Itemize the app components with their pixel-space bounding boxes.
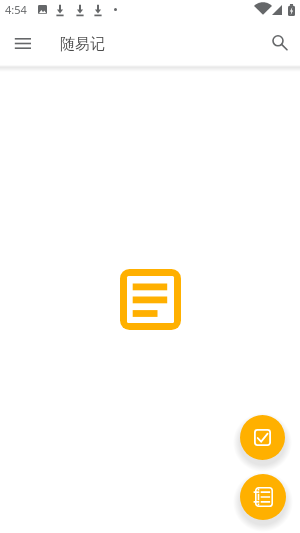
staticText: 随易记 — [60, 35, 105, 54]
button[interactable]: Search — [267, 29, 291, 53]
button[interactable]: New todo — [240, 415, 285, 460]
button[interactable]: New note — [240, 474, 286, 520]
staticText: 4:54 — [5, 2, 27, 17]
button[interactable]: Menu — [11, 31, 35, 55]
